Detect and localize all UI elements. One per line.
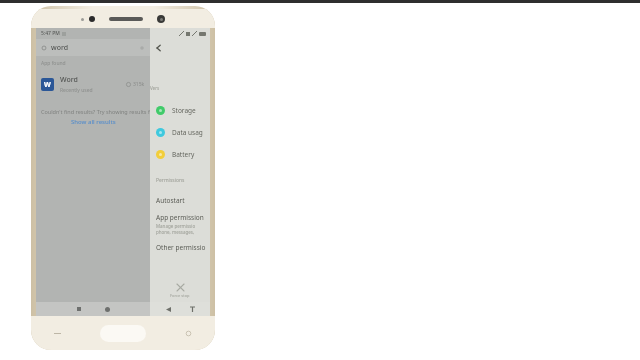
button[interactable]: Home — [100, 325, 146, 342]
staticText: App found — [41, 60, 66, 67]
staticText: Storage — [172, 106, 196, 115]
button[interactable]: Show all results — [71, 118, 116, 126]
staticText: W — [44, 80, 51, 90]
staticText: Other permissio — [156, 243, 206, 252]
button[interactable]: W — [41, 72, 145, 96]
button[interactable]: App permission — [156, 213, 210, 235]
staticText: 315k — [133, 81, 145, 88]
button[interactable]: Autostart — [156, 196, 210, 205]
staticText: word — [51, 43, 69, 53]
button[interactable]: Menu — [187, 304, 197, 314]
button[interactable]: Back — [150, 39, 168, 57]
button[interactable]: Other permissio — [156, 243, 210, 252]
staticText: Force stop — [170, 293, 190, 298]
button[interactable]: Data usag — [156, 121, 210, 143]
button[interactable]: Back — [163, 304, 173, 314]
button[interactable]: Close — [174, 281, 186, 293]
staticText: Permissions — [156, 177, 185, 184]
staticText: Battery — [172, 150, 195, 159]
button[interactable]: Home — [102, 304, 112, 314]
staticText: Autostart — [156, 196, 185, 205]
staticText: Vers — [150, 85, 204, 91]
staticText: Recently used — [60, 87, 93, 94]
staticText: Couldn't find results? Try showing resul… — [41, 108, 150, 115]
button[interactable]: Recents — [53, 329, 62, 338]
button[interactable]: Back — [184, 329, 193, 338]
staticText: Data usag — [172, 128, 203, 137]
button[interactable]: Battery — [156, 143, 210, 165]
button[interactable]: Recents — [74, 304, 84, 314]
staticText: 5:47 PM — [41, 30, 60, 37]
button[interactable]: word — [41, 39, 145, 56]
staticText: Manage permissio phone, messages, — [156, 223, 196, 235]
staticText: App permission — [156, 213, 204, 222]
button[interactable]: Storage — [156, 99, 210, 121]
staticText: Word — [60, 75, 78, 85]
